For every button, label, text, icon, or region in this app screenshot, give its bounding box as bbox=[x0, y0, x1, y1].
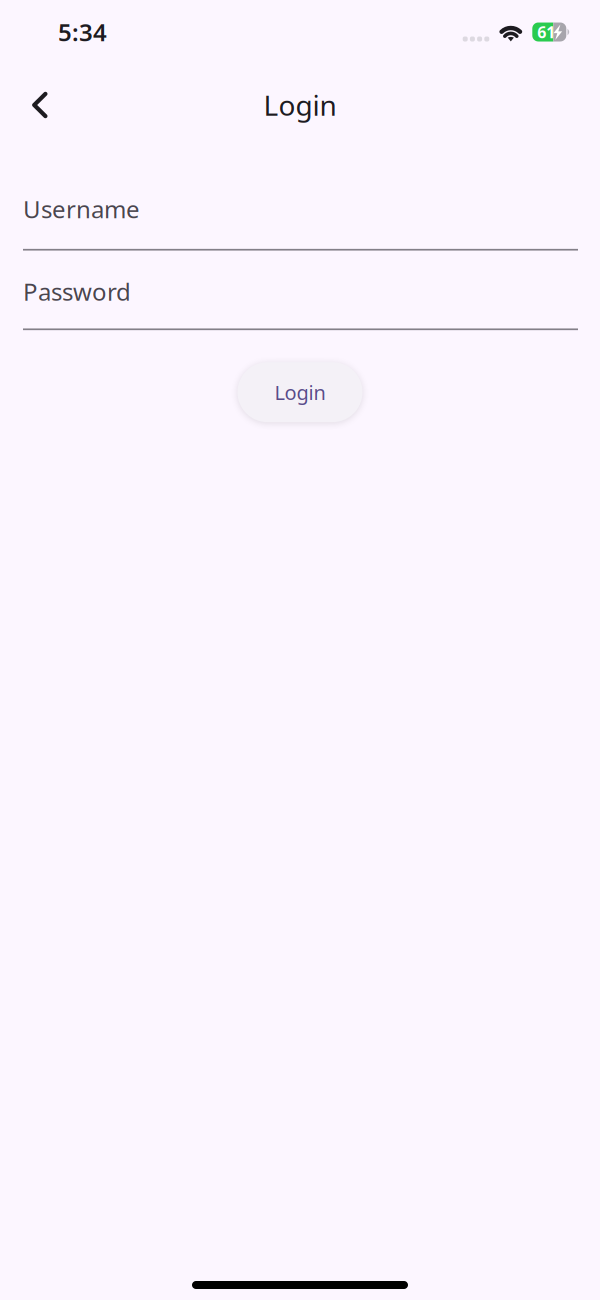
staticText: 5:34 bbox=[58, 16, 107, 48]
staticText: Password bbox=[23, 276, 131, 307]
button[interactable]: Username bbox=[23, 172, 578, 251]
staticText: 61 bbox=[537, 21, 555, 43]
button[interactable]: Back bbox=[0, 75, 64, 123]
staticText: Username bbox=[23, 193, 140, 225]
button[interactable]: Password bbox=[23, 251, 578, 330]
button[interactable]: Login bbox=[237, 362, 362, 422]
staticText: Login bbox=[274, 379, 325, 405]
staticText: Login bbox=[263, 86, 336, 124]
